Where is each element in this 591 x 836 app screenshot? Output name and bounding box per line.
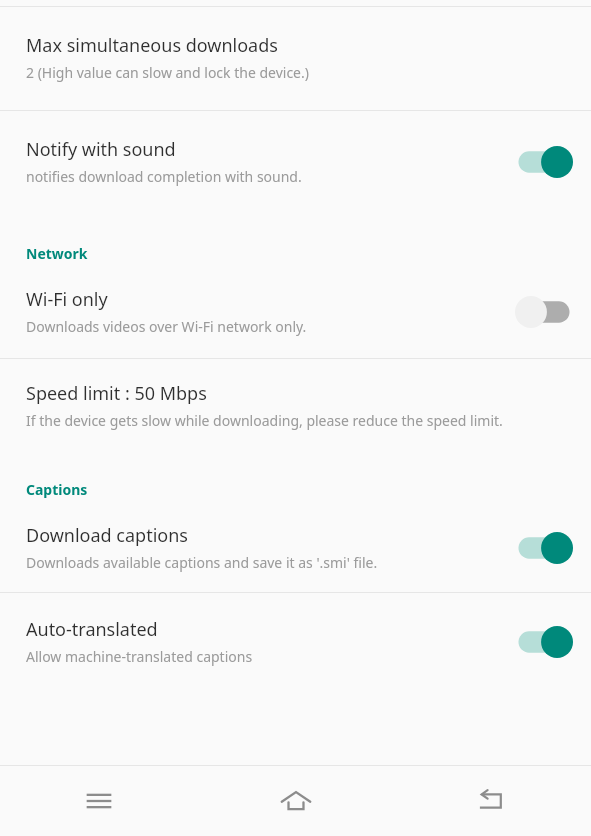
staticText: notifies download completion with sound.	[26, 167, 302, 186]
staticText: Max simultaneous downloads	[26, 33, 278, 58]
button[interactable]: Wi-Fi only	[515, 293, 573, 331]
staticText: Auto-translated	[26, 617, 158, 642]
button[interactable]: Auto-translated	[515, 623, 573, 661]
button[interactable]: Home	[197, 766, 394, 836]
button[interactable]: Recent apps	[0, 766, 197, 836]
staticText: Network	[26, 244, 88, 263]
button[interactable]: Max simultaneous downloads	[0, 7, 591, 110]
staticText: If the device gets slow while downloadin…	[26, 411, 503, 430]
staticText: Captions	[26, 480, 88, 499]
button[interactable]: Download captions	[0, 499, 591, 592]
staticText: Downloads available captions and save it…	[26, 553, 378, 572]
staticText: Wi-Fi only	[26, 287, 108, 312]
staticText: Speed limit : 50 Mbps	[26, 381, 207, 406]
button[interactable]: Wi-Fi only	[0, 263, 591, 358]
staticText: 2 (High value can slow and lock the devi…	[26, 63, 309, 82]
button[interactable]: Auto-translated	[0, 593, 591, 684]
button[interactable]: Speed limit : 50 Mbps	[0, 359, 591, 446]
button[interactable]: Notify with sound	[0, 111, 591, 208]
button[interactable]: Back	[394, 766, 591, 836]
button[interactable]: Notify with sound	[515, 143, 573, 181]
staticText: Downloads videos over Wi-Fi network only…	[26, 317, 307, 336]
staticText: Allow machine-translated captions	[26, 647, 253, 666]
button[interactable]: Download captions	[515, 529, 573, 567]
staticText: Notify with sound	[26, 137, 176, 162]
staticText: Download captions	[26, 523, 188, 548]
